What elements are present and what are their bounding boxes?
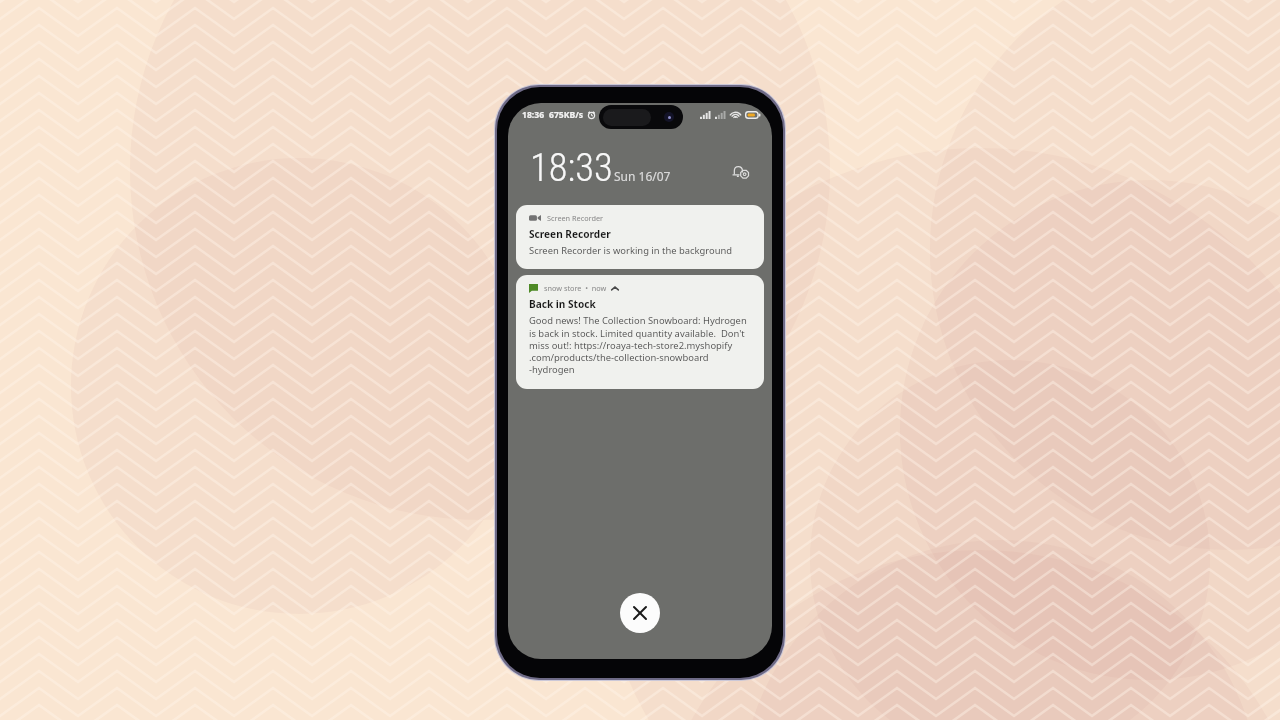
staticText: Good news! The Collection Snowboard: Hyd… <box>529 314 747 375</box>
button[interactable]: Notification settings <box>730 161 752 183</box>
staticText: Screen Recorder <box>547 213 604 223</box>
staticText: Screen Recorder <box>529 227 611 241</box>
staticText: Screen Recorder is working in the backgr… <box>529 244 733 257</box>
button[interactable]: snow store • now <box>516 275 764 389</box>
button[interactable]: Screen Recorder <box>516 205 764 269</box>
staticText: snow store • now <box>544 283 607 293</box>
staticText: 18:36 <box>522 109 545 121</box>
staticText: Sun 16/07 <box>614 168 671 184</box>
staticText: 675KB/s <box>549 109 584 121</box>
button[interactable]: Close <box>620 593 660 633</box>
staticText: 18:33 <box>530 145 613 185</box>
staticText: Back in Stock <box>529 297 596 311</box>
